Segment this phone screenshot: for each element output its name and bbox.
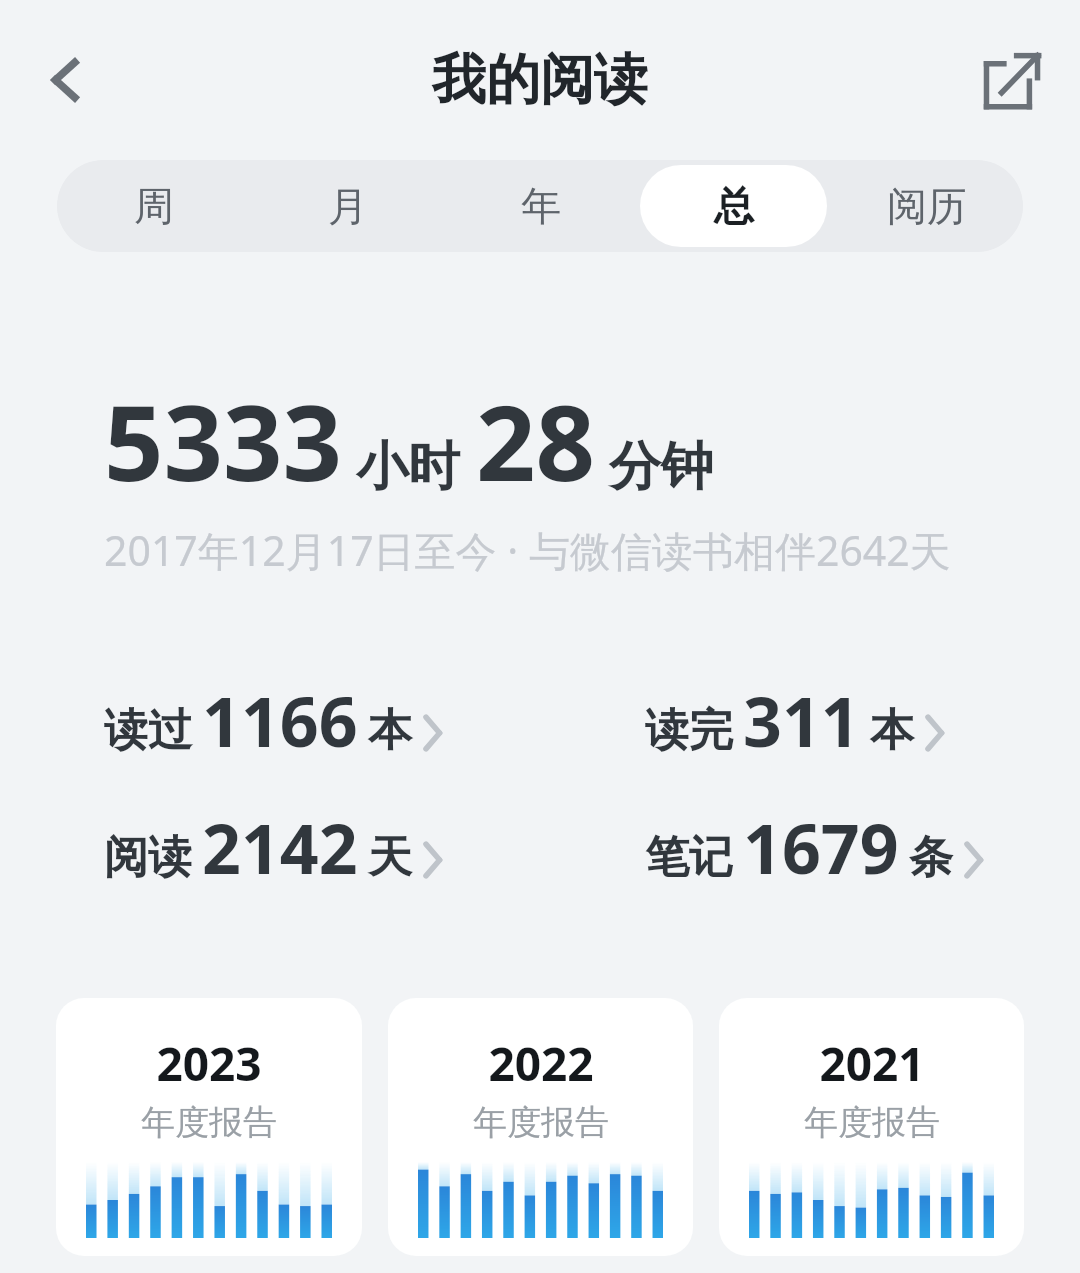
staticText: 阅读 xyxy=(104,830,192,885)
button[interactable]: 阅读 xyxy=(104,801,444,894)
staticText: 笔记 xyxy=(645,830,733,885)
staticText: 月 xyxy=(328,181,368,231)
staticText: 阅历 xyxy=(887,181,967,231)
staticText: 小时 xyxy=(356,434,460,500)
button[interactable]: 周 xyxy=(60,165,248,247)
staticText: 1679 xyxy=(743,801,899,894)
button[interactable]: 阅历 xyxy=(833,165,1020,247)
staticText: 28 xyxy=(476,370,595,512)
staticText: 1166 xyxy=(202,674,358,767)
staticText: 本 xyxy=(870,703,914,758)
staticText: 2021 xyxy=(819,1032,925,1095)
button[interactable]: 读完 xyxy=(645,674,946,767)
staticText: 5333 xyxy=(104,370,342,512)
button[interactable]: Share xyxy=(964,32,1060,128)
button[interactable]: 月 xyxy=(254,165,441,247)
staticText: 2022 xyxy=(488,1032,594,1095)
staticText: 311 xyxy=(743,674,860,767)
button[interactable]: 年 xyxy=(447,165,634,247)
staticText: 读完 xyxy=(645,703,733,758)
button[interactable]: 总 xyxy=(640,165,827,247)
staticText: 分钟 xyxy=(609,434,713,500)
staticText: 我的阅读 xyxy=(432,46,648,114)
button[interactable]: 笔记 xyxy=(645,801,985,894)
button[interactable]: 2021 xyxy=(719,998,1024,1256)
staticText: 本 xyxy=(368,703,412,758)
staticText: 2023 xyxy=(156,1032,262,1095)
button[interactable]: Back xyxy=(18,32,114,128)
staticText: 年度报告 xyxy=(473,1101,609,1144)
staticText: 2142 xyxy=(202,801,358,894)
staticText: 年度报告 xyxy=(141,1101,277,1144)
staticText: 2017年12月17日至今 · 与微信读书相伴2642天 xyxy=(104,522,951,578)
button[interactable]: 读过 xyxy=(104,674,444,767)
button[interactable]: 2022 xyxy=(388,998,693,1256)
staticText: 读过 xyxy=(104,703,192,758)
button[interactable]: 2023 xyxy=(56,998,362,1256)
staticText: 年 xyxy=(521,181,561,231)
staticText: 总 xyxy=(714,181,754,231)
staticText: 周 xyxy=(134,181,174,231)
staticText: 条 xyxy=(909,830,953,885)
staticText: 天 xyxy=(368,830,412,885)
staticText: 年度报告 xyxy=(804,1101,940,1144)
